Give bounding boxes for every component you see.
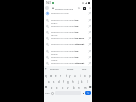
staticText: y [69, 74, 71, 78]
staticText: attempt for sale with attempt anne [51, 61, 85, 64]
staticText: attempt for sale with the girls [51, 36, 85, 39]
staticText: w [50, 74, 53, 78]
button[interactable]: t [64, 73, 68, 78]
button[interactable]: x [55, 85, 59, 90]
staticText: e [55, 74, 57, 78]
button[interactable]: Emoji [51, 92, 54, 95]
button[interactable]: Backspace [88, 85, 92, 89]
button[interactable]: Account [45, 6, 49, 10]
staticText: grade [67, 68, 74, 71]
button[interactable]: b [72, 85, 76, 90]
button[interactable]: g [66, 79, 70, 84]
button[interactable]: Insert suggestion [88, 50, 91, 53]
button[interactable]: attempt for sale with attempt terms [44, 41, 92, 47]
staticText: as Facebook ask its links [51, 64, 78, 67]
staticText: z [51, 86, 53, 90]
button[interactable]: Clipboard [45, 68, 47, 70]
staticText: attempt [50, 68, 59, 71]
button[interactable]: d [57, 79, 61, 84]
staticText: j [78, 80, 79, 84]
staticText: 9:41 [46, 1, 51, 4]
staticText: g [67, 80, 69, 84]
staticText: h [72, 80, 74, 84]
staticText: o [84, 74, 86, 78]
staticText: q [45, 74, 47, 78]
button[interactable]: Shift [44, 85, 48, 89]
button[interactable]: Tabs [83, 7, 86, 10]
button[interactable]: Insert suggestion [88, 37, 91, 40]
button[interactable]: Reload [78, 7, 80, 9]
button[interactable]: n [77, 85, 81, 90]
staticText: v [67, 86, 69, 90]
button[interactable]: v [66, 85, 70, 90]
staticText: name [51, 58, 58, 61]
button[interactable]: m [83, 85, 87, 90]
button[interactable]: j [76, 79, 80, 84]
button[interactable]: c [61, 85, 65, 90]
staticText: t [66, 74, 67, 78]
staticText: angry [51, 21, 58, 24]
staticText: attempt for sale [51, 11, 69, 14]
button[interactable]: l [85, 79, 89, 84]
staticText: p [89, 74, 91, 78]
staticText: attempt for sale with the attempt [51, 18, 85, 21]
button[interactable]: attempt for sale with the girls [44, 35, 92, 41]
button[interactable]: k [80, 79, 84, 84]
staticText: i [80, 74, 81, 78]
button[interactable]: Period [82, 91, 84, 95]
button[interactable]: Insert suggestion [88, 25, 91, 28]
button[interactable]: Search [85, 91, 91, 95]
button[interactable]: Insert suggestion [88, 62, 91, 65]
button[interactable]: u [73, 73, 77, 78]
staticText: n [78, 86, 80, 90]
button[interactable]: a [47, 79, 51, 84]
staticText: sale [82, 68, 87, 71]
staticText: f [63, 80, 64, 84]
staticText: l [87, 80, 88, 84]
button[interactable]: s [52, 79, 56, 84]
button[interactable]: attempt for sale with the grade [44, 29, 92, 35]
button[interactable]: f [61, 79, 65, 84]
button[interactable]: z [50, 85, 54, 90]
button[interactable]: Insert suggestion [88, 19, 91, 22]
button[interactable]: p [88, 73, 92, 78]
button[interactable]: Insert suggestion [88, 43, 91, 46]
button[interactable]: attempt for sale with attempt anne [44, 60, 92, 66]
staticText: ?123 [45, 92, 50, 95]
button[interactable]: attempt for sale [44, 10, 92, 16]
button[interactable]: h [71, 79, 75, 84]
button[interactable]: attempt for sale with the grade [44, 23, 92, 29]
button[interactable]: q [44, 73, 48, 78]
button[interactable]: e [54, 73, 58, 78]
staticText: u [74, 74, 76, 78]
staticText: a [48, 80, 50, 84]
staticText: 6 [84, 7, 86, 10]
staticText: terms [51, 33, 58, 36]
staticText: attempt for sale with the attempt [51, 49, 85, 52]
button[interactable]: i [78, 73, 82, 78]
button[interactable]: r [59, 73, 63, 78]
staticText: attempt for sale with the grade [51, 55, 85, 58]
button[interactable]: attempt for sale with the attempt [44, 48, 92, 54]
staticText: above [51, 52, 58, 55]
button[interactable]: attempt for sale with the grade [44, 54, 92, 60]
staticText: b [73, 86, 75, 90]
staticText: google.com/sea [55, 7, 73, 10]
staticText: m [84, 86, 87, 90]
button[interactable]: Symbols [45, 91, 50, 96]
staticText: r [60, 74, 62, 78]
staticText: c [62, 86, 64, 90]
staticText: s [53, 80, 55, 84]
button[interactable]: attempt for sale with the attempt [44, 17, 92, 23]
button[interactable]: y [68, 73, 72, 78]
staticText: attempt for sale with attempt terms [51, 42, 85, 45]
staticText: d [58, 80, 60, 84]
button[interactable]: Insert suggestion [88, 12, 91, 15]
staticText: attempt for sale with the grade [51, 30, 85, 33]
button[interactable]: Insert suggestion [88, 31, 91, 34]
button[interactable]: o [83, 73, 87, 78]
button[interactable]: Insert suggestion [88, 56, 91, 59]
button[interactable]: w [49, 73, 53, 78]
